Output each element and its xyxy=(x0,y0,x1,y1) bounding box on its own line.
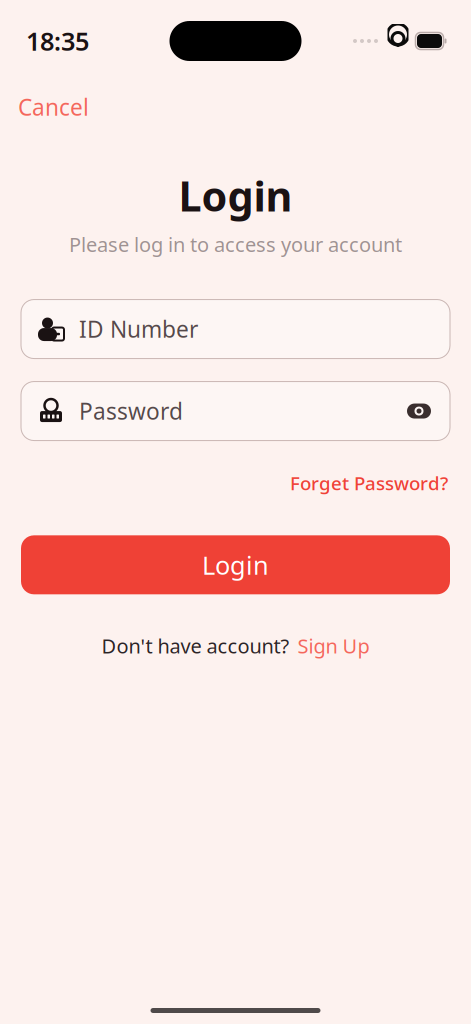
staticText: Login xyxy=(178,168,292,223)
button[interactable]: Sign Up xyxy=(297,628,369,663)
staticText: Login xyxy=(202,548,269,582)
button[interactable]: ID Number xyxy=(21,299,450,358)
button[interactable]: Forget Password? xyxy=(288,464,450,501)
button[interactable]: Login xyxy=(21,535,450,594)
staticText: Cancel xyxy=(18,92,89,122)
staticText: Password xyxy=(79,396,183,426)
button[interactable]: Cancel xyxy=(0,84,107,130)
staticText: Please log in to access your account xyxy=(69,231,402,258)
button[interactable]: Password xyxy=(21,381,450,440)
staticText: Sign Up xyxy=(297,632,369,659)
staticText: Don't have account? xyxy=(101,632,289,659)
staticText: 18:35 xyxy=(26,24,89,58)
staticText: Forget Password? xyxy=(290,470,448,495)
staticText: ID Number xyxy=(79,314,198,344)
